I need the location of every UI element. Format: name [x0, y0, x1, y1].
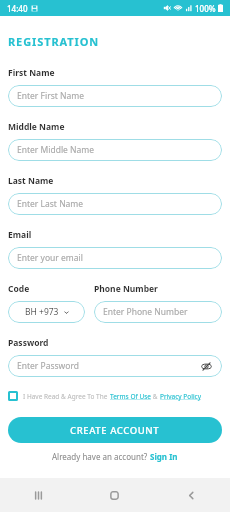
staticText: 14:40 [7, 3, 28, 14]
staticText: Enter Password [17, 360, 200, 372]
button[interactable]: Enter your email [8, 247, 222, 269]
button[interactable]: Show password [200, 360, 213, 373]
staticText: Enter Phone Number [103, 306, 213, 318]
staticText: BH +973 [25, 306, 59, 318]
staticText: Enter First Name [17, 90, 213, 102]
staticText: REGISTRATION [8, 34, 100, 49]
staticText: Code [8, 283, 30, 295]
button[interactable]: Enter Middle Name [8, 139, 222, 161]
staticText: & [151, 392, 160, 401]
staticText: First Name [8, 67, 55, 79]
staticText: Middle Name [8, 121, 65, 133]
staticText: CREATE ACCOUNT [70, 424, 160, 437]
button[interactable]: Back [153, 478, 230, 512]
button[interactable]: Enter Password [8, 355, 222, 377]
button[interactable]: Enter Last Name [8, 193, 222, 215]
staticText: Enter Last Name [17, 198, 213, 210]
staticText: Password [8, 337, 49, 349]
button[interactable]: Terms Of Use [110, 392, 151, 401]
button[interactable]: BH +973 [8, 301, 85, 323]
button[interactable]: Recents [0, 478, 76, 512]
button[interactable]: Enter First Name [8, 85, 222, 107]
staticText: 100% [195, 3, 216, 14]
button[interactable]: I Have Read & Agree To The [8, 391, 222, 401]
staticText: I Have Read & Agree To The [23, 392, 110, 401]
button[interactable]: CREATE ACCOUNT [8, 417, 222, 443]
staticText: Already have an account? [52, 451, 150, 462]
button[interactable]: Home [76, 478, 153, 512]
staticText: Phone Number [94, 283, 158, 295]
staticText: Enter your email [17, 252, 213, 264]
staticText: Enter Middle Name [17, 144, 213, 156]
staticText: Email [8, 229, 32, 241]
button[interactable]: Enter Phone Number [94, 301, 222, 323]
button[interactable]: Sign In [150, 451, 178, 462]
staticText: Last Name [8, 175, 54, 187]
button[interactable]: Privacy Policy [160, 392, 202, 401]
